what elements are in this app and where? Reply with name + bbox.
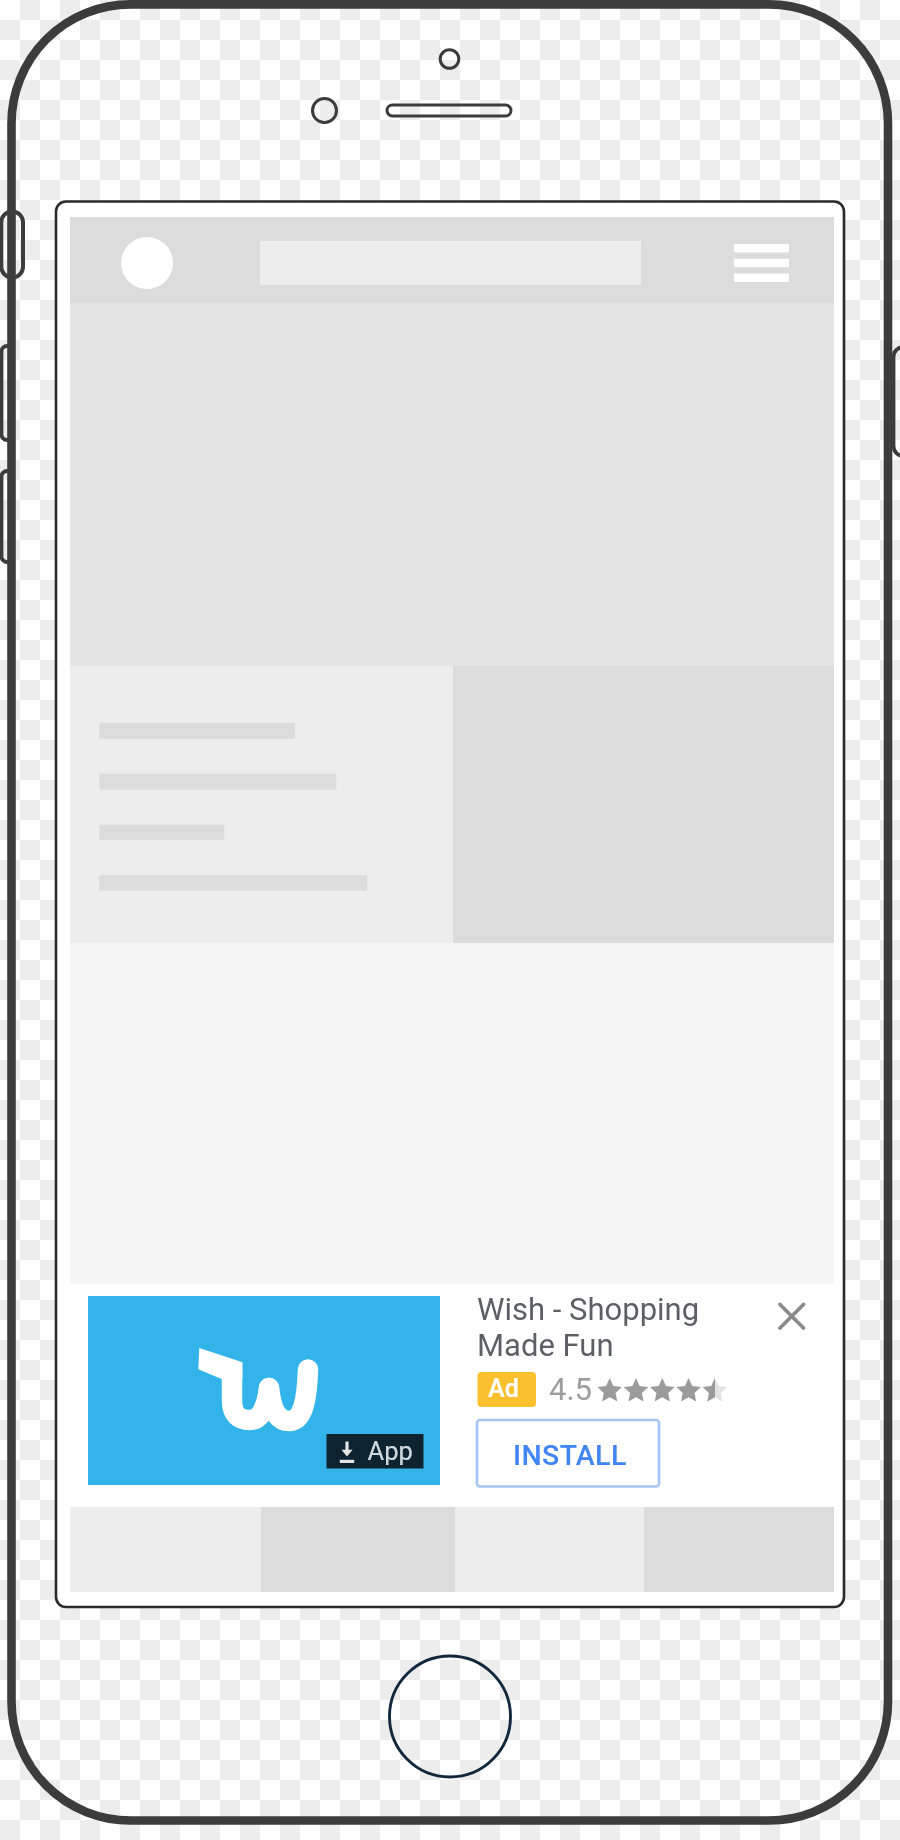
button[interactable]: Account [112, 228, 181, 297]
button[interactable]: Menu [722, 232, 801, 294]
button[interactable]: Wish - Shopping Made Fun advertisement [70, 1285, 834, 1507]
button[interactable]: Close ad [768, 1292, 816, 1340]
button[interactable]: INSTALL [477, 1420, 659, 1487]
button[interactable]: Wish app creative [88, 1296, 440, 1485]
